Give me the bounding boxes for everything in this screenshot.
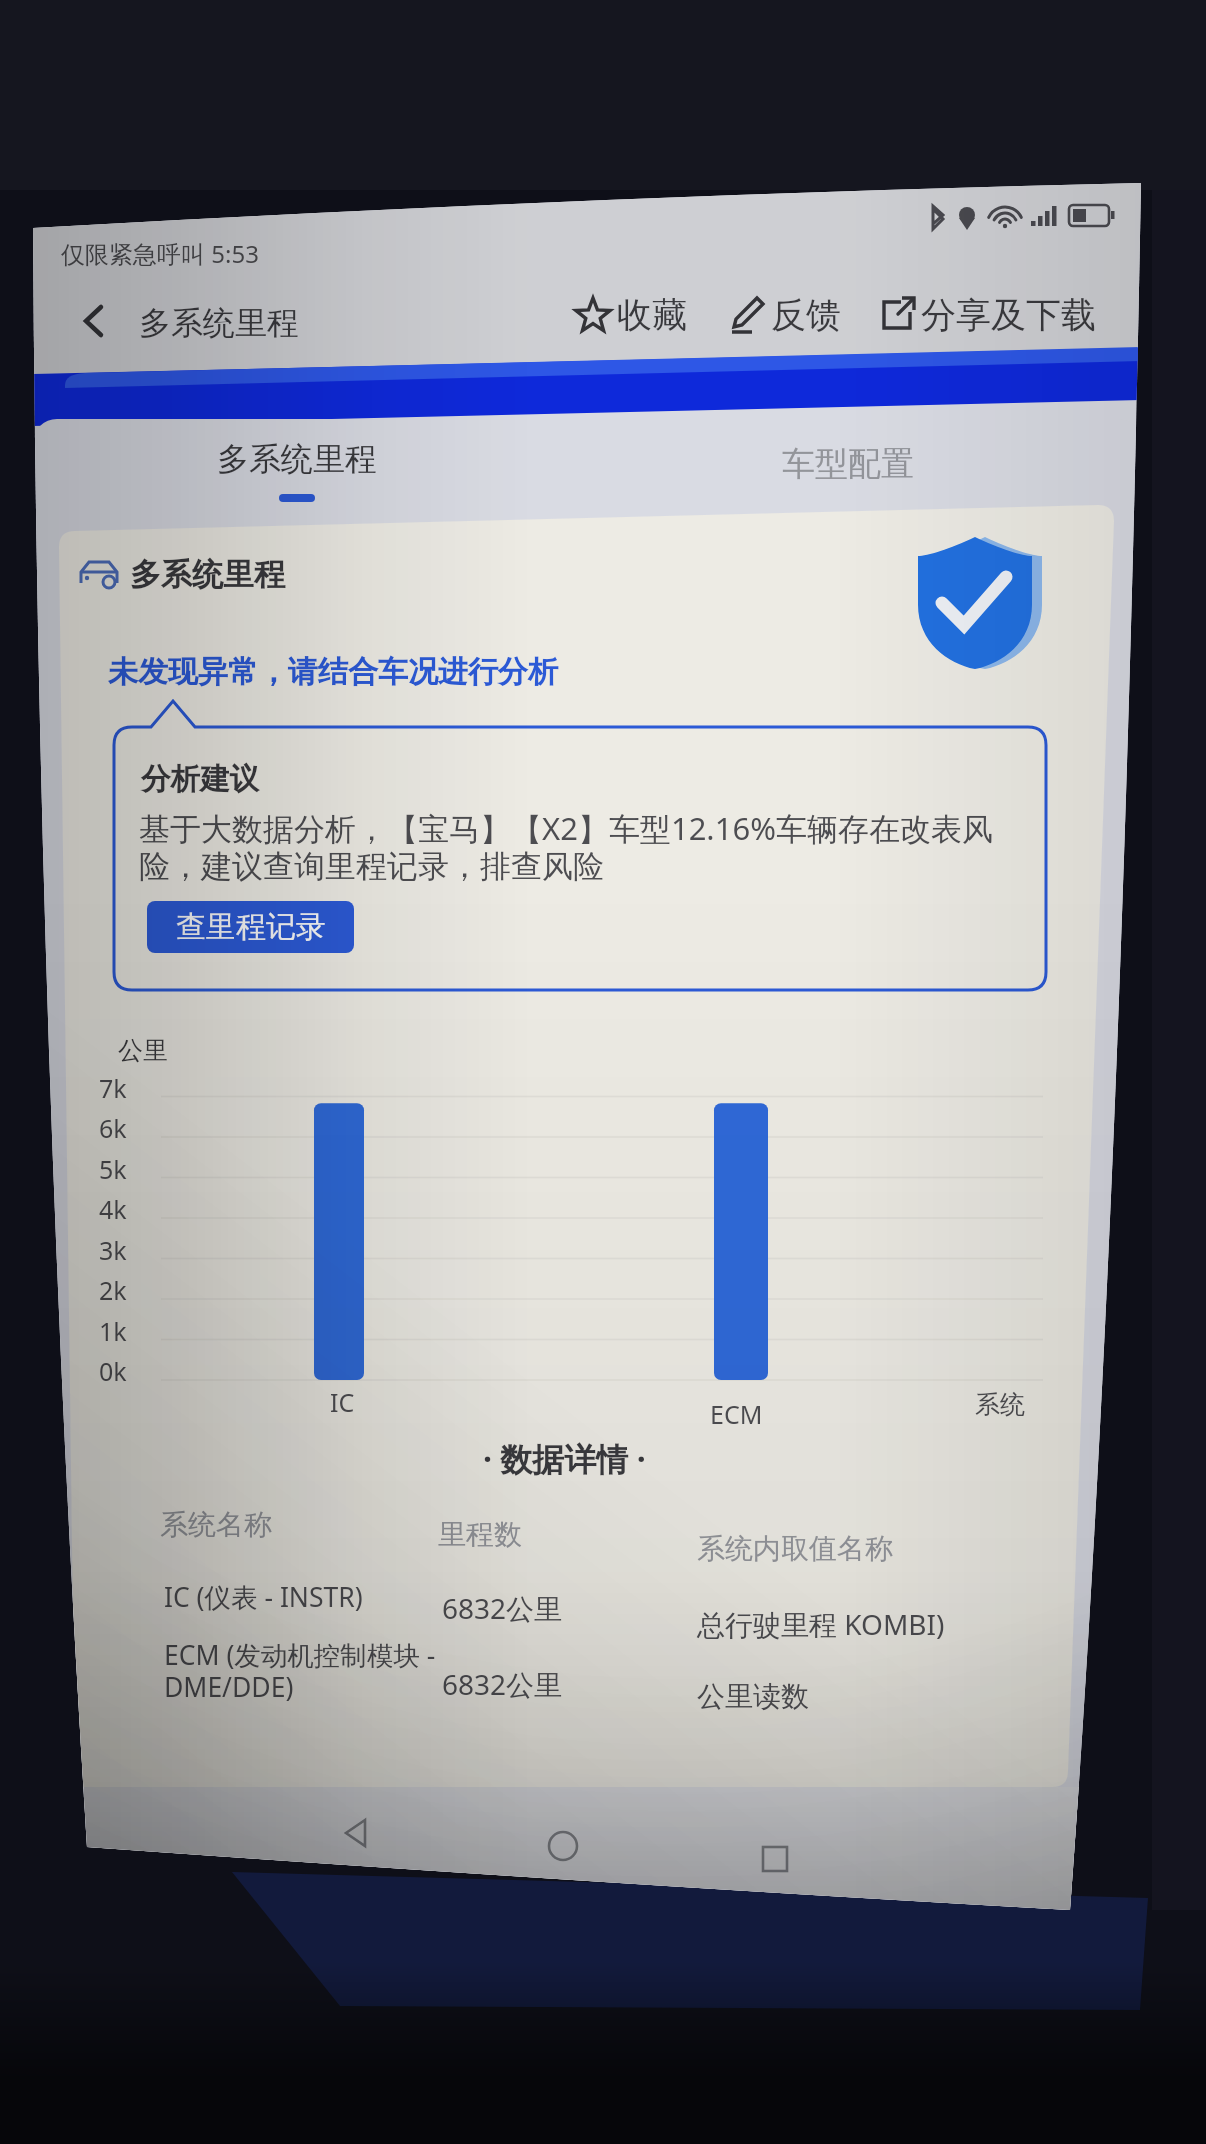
staticText: 7k [99, 1071, 127, 1105]
staticText: 公里读数 [697, 1679, 809, 1714]
button[interactable]: Back [53, 281, 137, 361]
staticText: 总行驶里程 KOMBI) [697, 1605, 945, 1643]
button[interactable]: 车型配置 [668, 423, 1028, 535]
staticText: 2k [99, 1273, 127, 1307]
staticText: ECM (发动机控制模块 - [164, 1637, 436, 1673]
staticText: 多系统里程 [217, 439, 377, 479]
staticText: 多系统里程 [139, 303, 299, 343]
staticText: 里程数 [438, 1517, 522, 1552]
staticText: 5k [99, 1152, 127, 1186]
staticText: 分享及下载 [921, 293, 1096, 337]
staticText: 车型配置 [782, 443, 914, 485]
button[interactable]: Feedback [727, 293, 841, 337]
staticText: 系统内取值名称 [697, 1531, 893, 1566]
staticText: ECM [710, 1397, 763, 1431]
button[interactable]: 查里程记录 [147, 901, 354, 953]
staticText: 多系统里程 [130, 555, 285, 594]
button[interactable]: Share and download [877, 293, 1096, 337]
button[interactable]: Back [305, 1781, 409, 1885]
staticText: IC (仪表 - INSTR) [164, 1579, 363, 1615]
staticText: 分析建议 [141, 761, 259, 798]
staticText: 公里 [118, 1035, 168, 1066]
staticText: · 数据详情 · [483, 1437, 646, 1481]
staticText: 0k [99, 1354, 127, 1388]
staticText: 反馈 [771, 293, 841, 337]
button[interactable]: Home [511, 1794, 615, 1898]
staticText: 基于大数据分析，【宝马】【X2】车型12.16%车辆存在改表风 [139, 807, 993, 849]
staticText: 6k [99, 1111, 127, 1145]
staticText: 3k [99, 1233, 127, 1267]
staticText: IC [330, 1385, 355, 1419]
staticText: DME/DDE) [164, 1669, 294, 1705]
staticText: 4k [99, 1192, 127, 1226]
staticText: 6832公里 [442, 1665, 563, 1703]
staticText: 系统名称 [160, 1507, 272, 1542]
staticText: 仅限紧急呼叫 5:53 [61, 237, 259, 270]
button[interactable]: Favorite [573, 293, 687, 337]
staticText: 系统 [975, 1389, 1025, 1420]
staticText: 查里程记录 [176, 908, 326, 946]
staticText: 险，建议查询里程记录，排查风险 [139, 847, 604, 886]
staticText: 收藏 [617, 293, 687, 337]
staticText: 1k [99, 1314, 127, 1348]
button[interactable]: 多系统里程 [117, 423, 477, 535]
staticText: 未发现异常，请结合车况进行分析 [108, 653, 558, 691]
staticText: 6832公里 [442, 1589, 563, 1627]
button[interactable]: Recent apps [723, 1807, 827, 1911]
